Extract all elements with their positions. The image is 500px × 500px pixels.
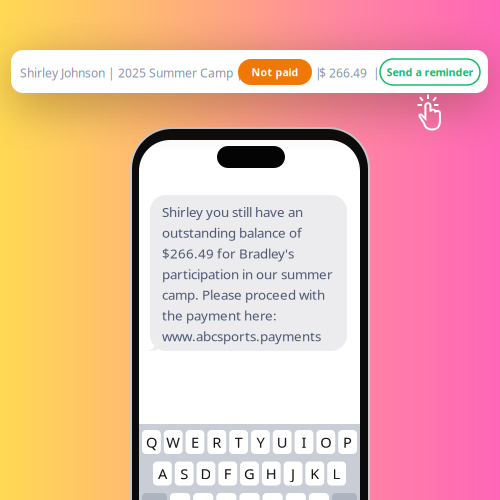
- staticText: H: [266, 464, 277, 483]
- staticText: Not paid: [251, 65, 298, 79]
- button[interactable]: N: [286, 493, 306, 500]
- staticText: Y: [256, 432, 264, 452]
- staticText: L: [333, 464, 341, 483]
- staticText: U: [277, 432, 288, 452]
- staticText: Shirley Johnson | 2025 Summer Camp |: [20, 65, 243, 81]
- staticText: O: [320, 432, 331, 452]
- button[interactable]: H: [262, 461, 281, 485]
- button[interactable]: K: [305, 461, 324, 485]
- button[interactable]: Z: [170, 493, 190, 500]
- button[interactable]: E: [186, 430, 204, 454]
- button[interactable]: M: [309, 493, 329, 500]
- button[interactable]: S: [175, 461, 194, 485]
- staticText: R: [212, 432, 221, 452]
- button[interactable]: F: [218, 461, 237, 485]
- staticText: G: [244, 464, 255, 483]
- button[interactable]: Delete: [332, 493, 357, 500]
- button[interactable]: Q: [142, 430, 161, 454]
- button[interactable]: X: [193, 493, 213, 500]
- button[interactable]: L: [327, 461, 346, 485]
- button[interactable]: I: [295, 430, 313, 454]
- button[interactable]: Send a reminder: [380, 59, 480, 85]
- staticText: I: [301, 432, 306, 452]
- button[interactable]: R: [207, 430, 226, 454]
- staticText: |: [315, 65, 322, 81]
- button[interactable]: C: [216, 493, 236, 500]
- button[interactable]: P: [338, 430, 357, 454]
- button[interactable]: T: [229, 430, 248, 454]
- staticText: Shirley you still have an outstanding ba…: [162, 203, 333, 345]
- button[interactable]: D: [197, 461, 215, 485]
- button[interactable]: O: [316, 430, 335, 454]
- staticText: K: [310, 464, 319, 483]
- button[interactable]: G: [240, 461, 259, 485]
- staticText: D: [200, 464, 211, 483]
- staticText: Send a reminder: [386, 65, 473, 79]
- button[interactable]: J: [284, 461, 302, 485]
- staticText: A: [158, 464, 167, 483]
- staticText: T: [235, 432, 243, 452]
- button[interactable]: Y: [251, 430, 270, 454]
- button[interactable]: U: [273, 430, 292, 454]
- button[interactable]: Shift: [142, 493, 167, 500]
- button[interactable]: V: [239, 493, 259, 500]
- button[interactable]: Not paid: [238, 59, 312, 85]
- staticText: P: [343, 432, 352, 452]
- staticText: E: [191, 432, 199, 452]
- button[interactable]: A: [153, 461, 172, 485]
- staticText: W: [166, 432, 180, 452]
- staticText: S: [180, 464, 188, 483]
- staticText: |: [373, 65, 380, 81]
- staticText: F: [224, 464, 232, 483]
- button[interactable]: B: [263, 493, 283, 500]
- staticText: $ 266.49: [319, 65, 367, 81]
- staticText: J: [291, 464, 295, 483]
- staticText: Q: [146, 432, 157, 452]
- button[interactable]: W: [164, 430, 183, 454]
